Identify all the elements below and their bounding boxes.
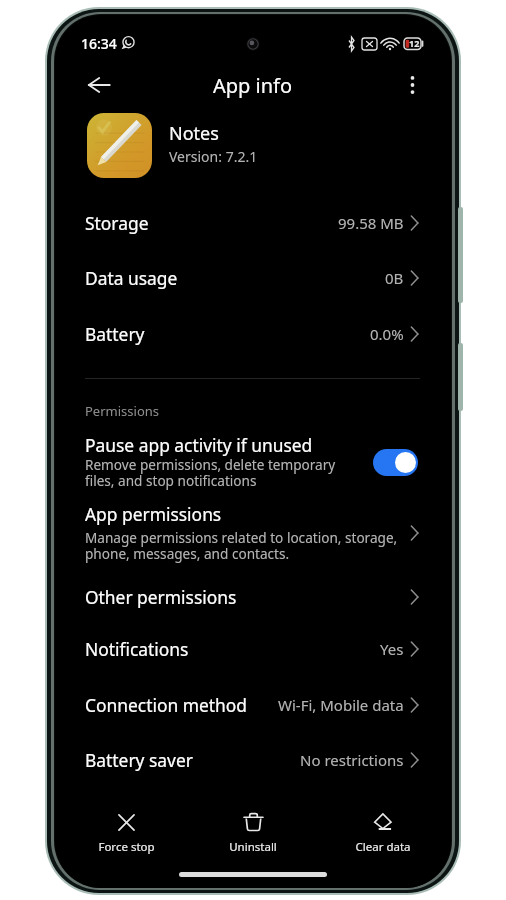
button[interactable]: Battery	[55, 306, 451, 362]
staticText: Manage permissions related to location, …	[85, 528, 398, 563]
button[interactable]: Storage	[55, 195, 451, 251]
staticText: Force stop	[98, 839, 155, 855]
staticText: 16:34	[81, 34, 117, 53]
staticText: Other permissions	[85, 585, 237, 609]
staticText: App info	[213, 72, 293, 99]
staticText: Wi-Fi, Mobile data	[278, 695, 404, 715]
staticText: Battery saver	[85, 748, 193, 772]
staticText: Storage	[85, 211, 149, 235]
staticText: 0B	[385, 268, 404, 288]
staticText: 0.0%	[370, 324, 404, 344]
staticText: App permissions	[85, 502, 222, 526]
staticText: Remove permissions, delete temporary fil…	[85, 455, 336, 490]
staticText: Pause app activity if unused	[85, 433, 313, 457]
button[interactable]: Notifications	[55, 621, 451, 677]
button[interactable]: Data usage	[55, 250, 451, 306]
staticText: Battery	[85, 322, 145, 346]
staticText: Notifications	[85, 637, 189, 661]
button[interactable]: App permissions	[55, 498, 451, 573]
staticText: No restrictions	[300, 750, 404, 770]
staticText: 12	[409, 37, 420, 49]
button[interactable]: Connection method	[55, 677, 451, 733]
button[interactable]: More options	[396, 69, 428, 101]
button[interactable]: Force stop	[69, 805, 183, 865]
staticText: Clear data	[355, 839, 411, 855]
staticText: Connection method	[85, 693, 248, 717]
button[interactable]: Pause app activity if unused	[55, 430, 451, 502]
staticText: Notes	[169, 121, 219, 146]
staticText: Uninstall	[229, 839, 277, 855]
staticText: Data usage	[85, 266, 178, 290]
staticText: Version: 7.2.1	[169, 147, 258, 166]
staticText: 99.58 MB	[338, 213, 404, 233]
button[interactable]: Battery saver	[55, 732, 451, 788]
button[interactable]: Pause app activity if unused toggle	[373, 449, 418, 476]
button[interactable]: Back	[83, 69, 115, 101]
staticText: Yes	[380, 639, 404, 659]
button[interactable]: Clear data	[326, 805, 440, 865]
staticText: Permissions	[85, 402, 160, 420]
button[interactable]: Uninstall	[196, 805, 310, 865]
button[interactable]: Other permissions	[55, 569, 451, 625]
